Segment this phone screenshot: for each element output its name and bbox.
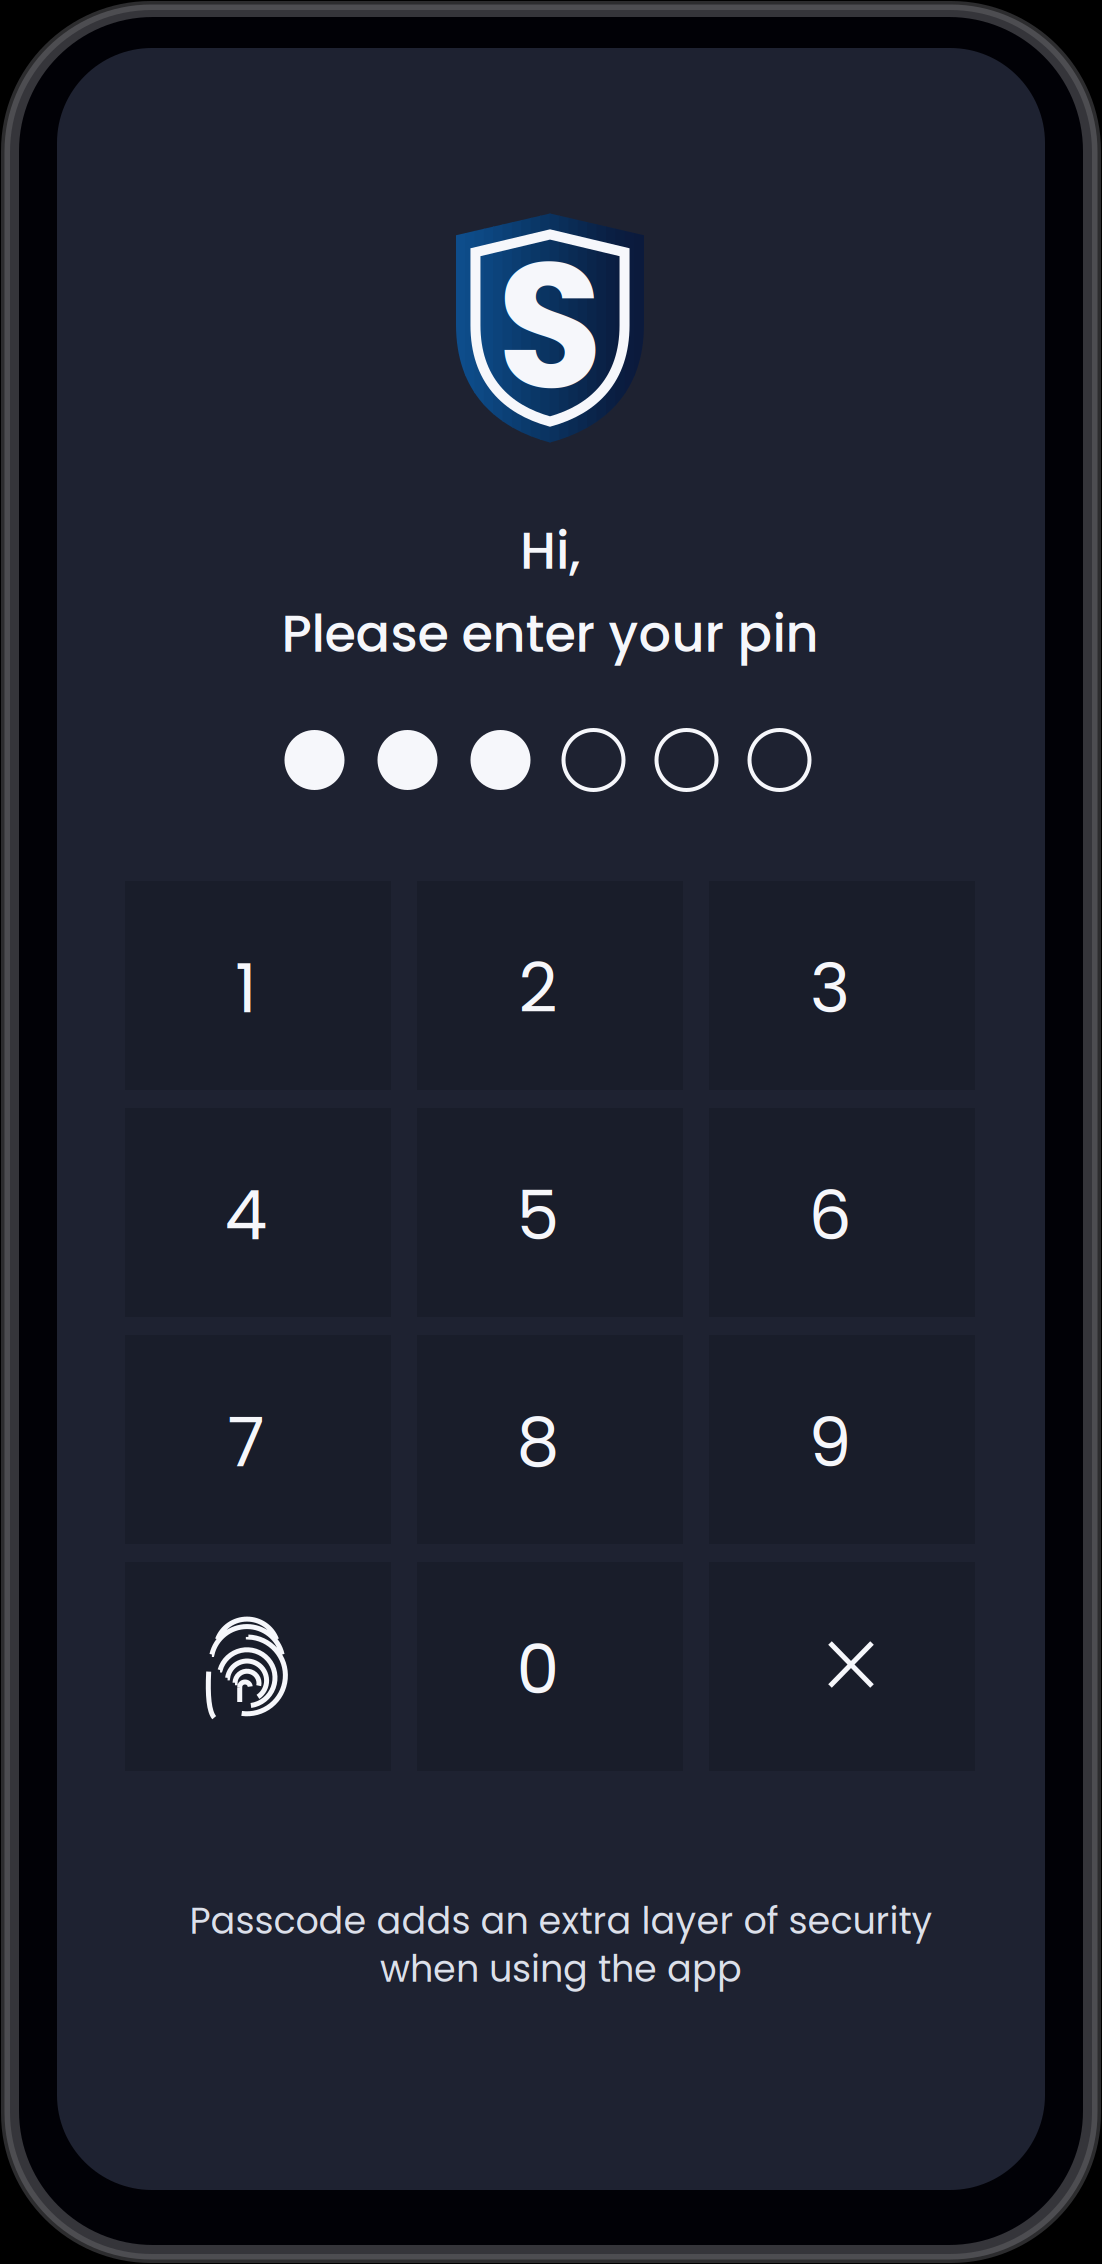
- staticText: 8: [516, 1395, 559, 1490]
- staticText: Passcode adds an extra layer of security: [189, 1895, 932, 1947]
- staticText: Hi,: [520, 515, 580, 587]
- button[interactable]: 0: [417, 1562, 683, 1771]
- button[interactable]: 7: [125, 1335, 391, 1544]
- button[interactable]: 3: [709, 881, 975, 1090]
- staticText: 1: [235, 941, 257, 1036]
- staticText: when using the app: [380, 1943, 742, 1995]
- button[interactable]: 6: [709, 1108, 975, 1317]
- staticText: 2: [518, 941, 557, 1036]
- button[interactable]: 2: [417, 881, 683, 1090]
- button[interactable]: 8: [417, 1335, 683, 1544]
- button[interactable]: Unlock with fingerprint: [125, 1562, 391, 1771]
- staticText: S: [496, 202, 604, 449]
- button[interactable]: 1: [125, 881, 391, 1090]
- staticText: 9: [808, 1395, 851, 1490]
- staticText: 4: [224, 1168, 267, 1263]
- staticText: Please enter your pin: [281, 598, 818, 670]
- staticText: 7: [227, 1395, 264, 1490]
- button[interactable]: 4: [125, 1108, 391, 1317]
- button[interactable]: Delete: [709, 1562, 975, 1771]
- staticText: 5: [516, 1168, 559, 1263]
- staticText: 6: [808, 1168, 851, 1263]
- button[interactable]: 9: [709, 1335, 975, 1544]
- button[interactable]: 5: [417, 1108, 683, 1317]
- staticText: 0: [516, 1622, 559, 1717]
- staticText: 3: [810, 941, 850, 1036]
